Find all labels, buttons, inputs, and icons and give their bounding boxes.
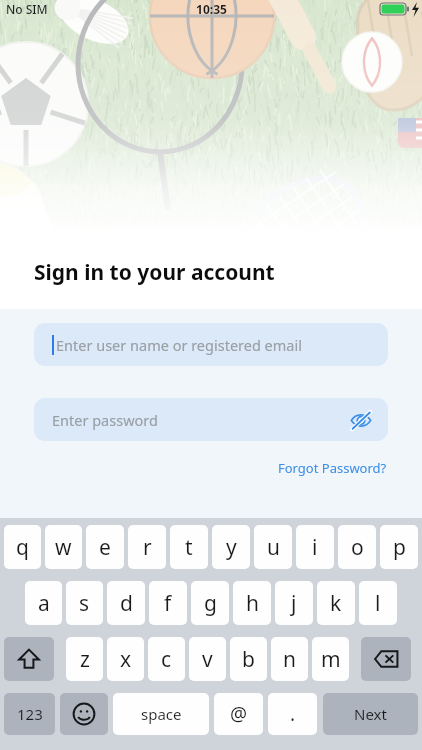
staticText: No SIM [6,1,48,17]
button[interactable]: m [312,637,349,681]
button[interactable]: . [268,693,317,735]
staticText: f [164,589,172,618]
button[interactable]: d [107,581,145,625]
staticText: z [80,645,90,674]
button[interactable]: i [296,525,334,569]
staticText: space [141,704,182,724]
button[interactable]: y [212,525,250,569]
staticText: d [120,589,133,618]
button[interactable]: Forgot Password? [276,457,389,479]
button[interactable]: Shift [4,637,54,681]
button[interactable]: k [317,581,355,625]
staticText: Enter user name or registered email [56,335,374,355]
staticText: u [267,533,280,562]
button[interactable]: o [338,525,376,569]
button[interactable]: a [25,581,62,625]
staticText: i [312,533,318,562]
staticText: o [351,533,364,562]
button[interactable]: f [149,581,187,625]
button[interactable]: Enter user name or registered email [34,323,388,366]
button[interactable]: w [45,525,82,569]
button[interactable]: Enter password [34,398,388,441]
button[interactable]: Emoji [60,693,108,735]
button[interactable]: Show password [348,407,374,433]
staticText: c [161,645,172,674]
button[interactable]: u [254,525,292,569]
button[interactable]: s [66,581,103,625]
button[interactable]: b [230,637,267,681]
button[interactable]: z [66,637,103,681]
staticText: x [120,645,132,674]
button[interactable]: space [113,693,209,735]
button[interactable]: c [148,637,185,681]
staticText: l [375,589,381,618]
button[interactable]: e [86,525,124,569]
button[interactable]: l [359,581,397,625]
staticText: k [330,589,342,618]
staticText: v [202,645,213,674]
staticText: Enter password [52,410,348,430]
button[interactable]: x [107,637,144,681]
staticText: m [321,645,341,674]
button[interactable]: v [189,637,226,681]
staticText: @ [230,701,248,727]
button[interactable]: Backspace [361,637,411,681]
button[interactable]: j [275,581,313,625]
staticText: Next [354,704,387,724]
staticText: y [226,533,237,562]
staticText: w [55,533,72,562]
button[interactable]: g [191,581,229,625]
staticText: s [79,589,90,618]
staticText: Sign in to your account [34,258,275,287]
staticText: q [16,533,29,562]
button[interactable]: 123 [4,693,55,735]
staticText: Forgot Password? [278,459,387,477]
staticText: e [99,533,111,562]
button[interactable]: @ [214,693,263,735]
staticText: t [185,533,193,562]
button[interactable]: q [4,525,41,569]
staticText: . [290,701,296,727]
staticText: r [143,533,152,562]
staticText: h [246,589,259,618]
staticText: b [242,645,255,674]
staticText: p [393,533,406,562]
staticText: j [291,589,297,618]
button[interactable]: n [271,637,308,681]
staticText: 10:35 [196,1,227,17]
button[interactable]: Next [323,693,418,735]
staticText: a [38,589,50,618]
button[interactable]: h [233,581,271,625]
button[interactable]: t [170,525,208,569]
button[interactable]: r [128,525,166,569]
staticText: g [204,589,217,618]
button[interactable]: p [380,525,418,569]
staticText: n [283,645,296,674]
staticText: 123 [17,704,43,724]
